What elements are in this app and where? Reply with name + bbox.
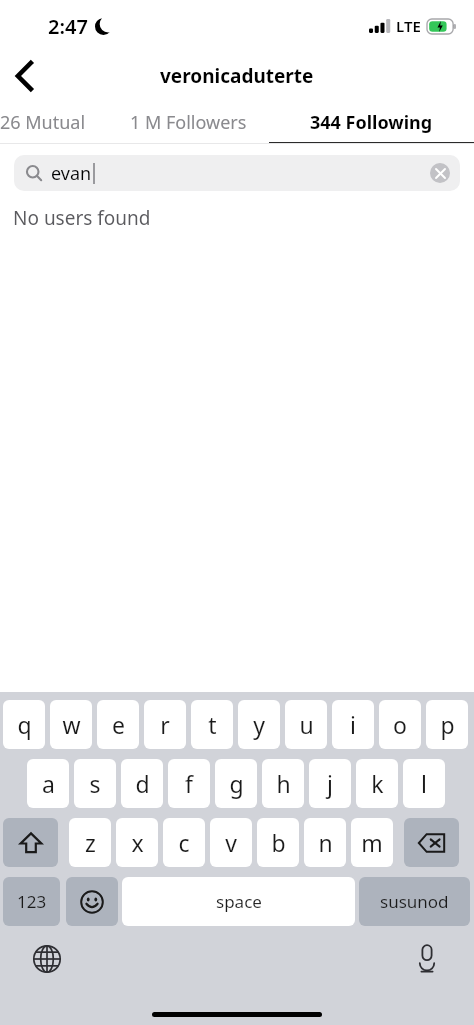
button[interactable]: i [332, 700, 374, 749]
staticText: u [299, 709, 314, 740]
staticText: o [393, 709, 407, 740]
staticText: susunod [380, 890, 449, 913]
staticText: 1 M Followers [130, 110, 247, 135]
button[interactable]: u [285, 700, 327, 749]
staticText: a [42, 768, 55, 799]
staticText: 344 Following [310, 110, 433, 135]
staticText: No users found [13, 205, 151, 231]
button[interactable]: t [191, 700, 233, 749]
button[interactable]: o [379, 700, 421, 749]
button[interactable]: k [356, 759, 398, 808]
staticText: y [253, 709, 265, 740]
staticText: space [216, 890, 262, 913]
button[interactable]: susunod [359, 877, 470, 926]
button[interactable]: c [163, 818, 205, 867]
button[interactable]: l [403, 759, 445, 808]
button[interactable]: Dictation [408, 940, 446, 978]
staticText: j [327, 768, 333, 799]
staticText: 2:47 [48, 13, 88, 40]
staticText: v [225, 827, 237, 858]
staticText: k [371, 768, 384, 799]
staticText: b [271, 827, 286, 858]
staticText: c [178, 827, 190, 858]
button[interactable]: q [3, 700, 45, 749]
button[interactable]: d [121, 759, 163, 808]
button[interactable]: 1 M Followers [122, 110, 255, 135]
staticText: LTE [396, 16, 421, 36]
button[interactable]: a [27, 759, 69, 808]
button[interactable]: p [426, 700, 468, 749]
button[interactable]: evan [14, 155, 460, 191]
staticText: evan [51, 161, 92, 186]
staticText: q [17, 709, 32, 740]
button[interactable]: y [238, 700, 280, 749]
staticText: l [421, 768, 427, 799]
button[interactable]: space [122, 877, 355, 926]
staticText: x [131, 827, 144, 858]
button[interactable]: g [215, 759, 257, 808]
button[interactable]: 344 Following [269, 100, 474, 144]
button[interactable]: m [351, 818, 393, 867]
staticText: t [208, 709, 217, 740]
staticText: g [229, 768, 244, 799]
button[interactable]: Back [0, 52, 48, 100]
button[interactable]: Shift [3, 818, 58, 867]
button[interactable]: j [309, 759, 351, 808]
button[interactable]: 26 Mutual [0, 110, 98, 135]
button[interactable]: f [168, 759, 210, 808]
button[interactable]: w [50, 700, 92, 749]
staticText: p [440, 709, 455, 740]
staticText: d [135, 768, 150, 799]
button[interactable]: b [257, 818, 299, 867]
staticText: h [276, 768, 291, 799]
staticText: z [85, 827, 96, 858]
staticText: veronicaduterte [160, 63, 314, 89]
button[interactable]: 123 [3, 877, 60, 926]
staticText: f [185, 768, 193, 799]
button[interactable]: n [304, 818, 346, 867]
staticText: 123 [17, 890, 47, 913]
button[interactable]: z [69, 818, 111, 867]
staticText: w [62, 709, 81, 740]
button[interactable]: Clear text [423, 156, 457, 190]
staticText: n [318, 827, 333, 858]
staticText: r [160, 709, 170, 740]
staticText: i [350, 709, 356, 740]
button[interactable]: Emoji [66, 877, 118, 926]
button[interactable]: e [97, 700, 139, 749]
button[interactable]: h [262, 759, 304, 808]
button[interactable]: x [116, 818, 158, 867]
button[interactable]: s [74, 759, 116, 808]
button[interactable]: r [144, 700, 186, 749]
staticText: 26 Mutual [0, 110, 86, 135]
staticText: s [89, 768, 101, 799]
button[interactable]: v [210, 818, 252, 867]
button[interactable]: Switch keyboard language [28, 940, 66, 978]
staticText: m [361, 827, 383, 858]
button[interactable]: Backspace [404, 818, 459, 867]
staticText: e [112, 709, 125, 740]
